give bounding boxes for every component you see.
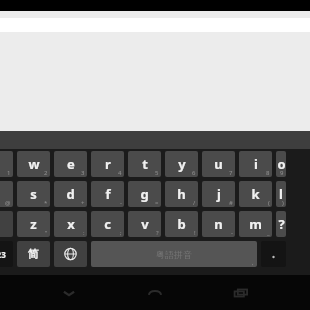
staticText: ( (268, 199, 270, 207)
staticText: , (252, 259, 254, 267)
staticText: 2 (44, 169, 48, 177)
staticText: z (30, 215, 37, 233)
button[interactable]: s (17, 181, 50, 207)
button[interactable]: v (128, 211, 161, 237)
button[interactable]: k (239, 181, 272, 207)
button[interactable]: g (128, 181, 161, 207)
staticText: f (105, 185, 111, 203)
staticText: " (45, 229, 48, 237)
button[interactable]: x (54, 211, 87, 237)
staticText: 5 (155, 169, 159, 177)
button[interactable]: o (276, 151, 286, 177)
button[interactable]: j (202, 181, 235, 207)
staticText: - (231, 229, 233, 237)
button[interactable]: q (0, 151, 13, 177)
button[interactable]: y (165, 151, 198, 177)
staticText: d (66, 185, 75, 203)
button[interactable]: n (202, 211, 235, 237)
staticText: @ (5, 199, 11, 207)
button[interactable]: 简 (17, 241, 50, 267)
staticText: u (214, 155, 223, 173)
staticText: 4 (118, 169, 122, 177)
button[interactable]: Symbols (0, 241, 13, 267)
staticText: ) (282, 199, 284, 207)
staticText: v (141, 215, 149, 233)
staticText: ? (278, 215, 285, 233)
staticText: 7 (229, 169, 233, 177)
button[interactable]: ? (276, 211, 286, 237)
button[interactable]: Recent apps (224, 276, 258, 310)
staticText: c (104, 215, 111, 233)
staticText: 3 (81, 169, 85, 177)
staticText: j (217, 185, 221, 203)
button[interactable]: Period (261, 241, 286, 267)
button[interactable]: Space (91, 241, 257, 267)
staticText: l (279, 185, 283, 203)
button[interactable]: Home (138, 276, 172, 310)
staticText: 简 (28, 247, 39, 261)
staticText: ? (156, 229, 159, 237)
staticText: s (30, 185, 37, 203)
button[interactable]: h (165, 181, 198, 207)
staticText: 8 (266, 169, 270, 177)
staticText: e (67, 155, 75, 173)
button[interactable]: z (17, 211, 50, 237)
button[interactable]: t (128, 151, 161, 177)
staticText: k (251, 185, 260, 203)
button[interactable]: w (17, 151, 50, 177)
button[interactable]: u (202, 151, 235, 177)
staticText: t (142, 155, 148, 173)
staticText: / (193, 199, 196, 207)
staticText: = (155, 199, 159, 207)
staticText: - (120, 199, 122, 207)
button[interactable]: Hide keyboard (52, 276, 86, 310)
staticText: y (178, 155, 186, 173)
button[interactable]: d (54, 181, 87, 207)
button[interactable]: c (91, 211, 124, 237)
staticText: # (229, 199, 233, 207)
staticText: w (28, 155, 40, 173)
button[interactable]: r (91, 151, 124, 177)
staticText: o (277, 155, 286, 173)
button[interactable]: Change language (54, 241, 87, 267)
staticText: b (177, 215, 186, 233)
button[interactable]: l (276, 181, 286, 207)
button[interactable]: e (54, 151, 87, 177)
staticText: * (44, 199, 48, 207)
staticText: 1 (7, 169, 11, 177)
staticText: m (249, 215, 262, 233)
staticText: : (83, 229, 85, 237)
staticText: h (177, 185, 186, 203)
button[interactable]: m (239, 211, 272, 237)
staticText: n (214, 215, 223, 233)
staticText: i (254, 155, 258, 173)
staticText: 粤語拼音 (156, 249, 192, 260)
staticText: ?123 (0, 249, 6, 260)
button[interactable]: i (239, 151, 272, 177)
staticText: r (105, 155, 111, 173)
staticText: g (140, 185, 149, 203)
button[interactable]: a (0, 181, 13, 207)
staticText: _ (267, 229, 270, 237)
staticText: 9 (280, 169, 284, 177)
staticText: ; (120, 229, 122, 237)
button[interactable]: f (91, 181, 124, 207)
staticText: x (67, 215, 75, 233)
staticText: ! (194, 229, 196, 237)
button[interactable]: b (165, 211, 198, 237)
staticText: 6 (192, 169, 196, 177)
staticText: + (81, 199, 85, 207)
